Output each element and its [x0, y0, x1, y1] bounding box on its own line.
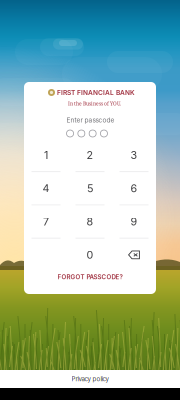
staticText: 0 — [86, 248, 93, 261]
button[interactable]: Delete — [112, 239, 156, 271]
button[interactable]: 9 — [112, 205, 156, 238]
staticText: 3 — [130, 149, 137, 162]
staticText: In the Business of YOU. — [68, 100, 121, 107]
staticText: 7 — [43, 215, 49, 228]
staticText: 2 — [86, 149, 93, 162]
button[interactable]: FORGOT PASSCODE? — [24, 268, 156, 286]
staticText: 1 — [44, 149, 48, 162]
staticText: Enter passcode — [66, 116, 114, 124]
button[interactable]: 1 — [24, 139, 68, 171]
button[interactable]: 0 — [68, 239, 112, 271]
staticText: 6 — [130, 182, 137, 195]
button[interactable]: 5 — [68, 172, 112, 204]
staticText: 9 — [130, 215, 137, 228]
button[interactable]: 4 — [24, 172, 68, 204]
button[interactable]: Privacy policy — [0, 370, 180, 388]
staticText: 4 — [42, 182, 49, 195]
button[interactable]: 7 — [24, 205, 68, 238]
button[interactable]: 8 — [68, 205, 112, 238]
button[interactable]: 6 — [112, 172, 156, 204]
staticText: 8 — [86, 215, 93, 228]
staticText: FORGOT PASSCODE? — [57, 273, 122, 281]
button[interactable]: 2 — [68, 139, 112, 171]
staticText: Privacy policy — [71, 375, 108, 383]
staticText: FIRST FINANCIAL BANK — [57, 88, 135, 96]
staticText: 5 — [87, 182, 93, 195]
button[interactable]: 3 — [112, 139, 156, 171]
